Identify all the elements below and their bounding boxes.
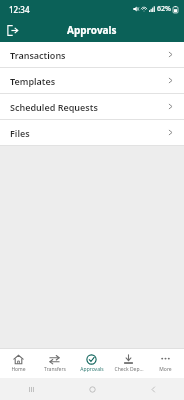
button[interactable]: Approvals	[73, 348, 110, 378]
staticText: More	[159, 366, 172, 373]
button[interactable]: Home	[0, 348, 36, 378]
button[interactable]: Templates	[0, 68, 184, 93]
staticText: Scheduled Requests	[10, 101, 167, 113]
button[interactable]: More	[147, 348, 184, 378]
staticText: 62%	[157, 4, 171, 14]
staticText: Approvals	[80, 366, 104, 373]
button[interactable]: Scheduled Requests	[0, 94, 184, 119]
staticText: Check Dep...	[114, 366, 144, 373]
staticText: Templates	[10, 75, 167, 87]
staticText: Transfers	[44, 366, 66, 373]
button[interactable]: Transfers	[36, 348, 73, 378]
button[interactable]: Check Dep...	[110, 348, 147, 378]
button[interactable]: Transactions	[0, 42, 184, 67]
staticText: Transactions	[10, 49, 167, 61]
staticText: Files	[10, 127, 167, 139]
staticText: Approvals	[67, 23, 117, 37]
button[interactable]: Files	[0, 120, 184, 145]
button[interactable]: Log out	[0, 18, 24, 42]
staticText: 12:34	[9, 4, 30, 15]
staticText: Home	[11, 366, 26, 373]
